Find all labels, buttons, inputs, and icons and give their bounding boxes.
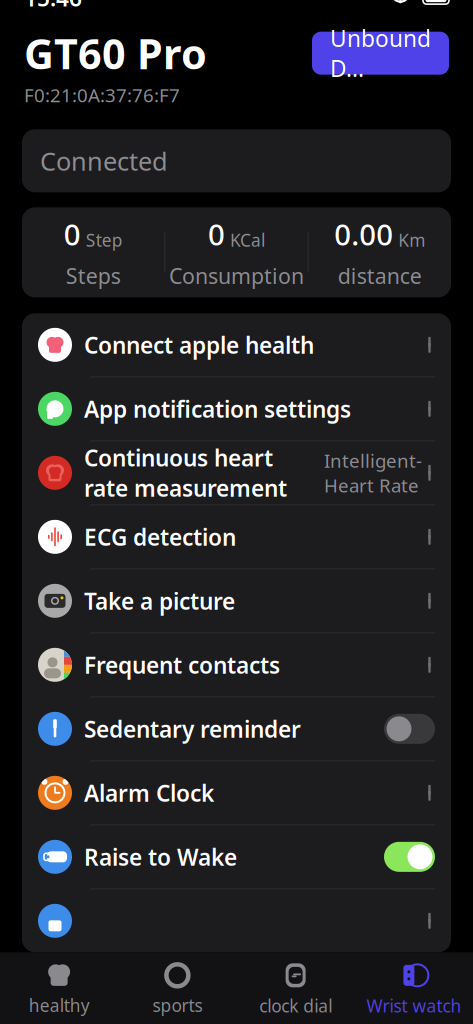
button[interactable]: Take a picture: [22, 569, 451, 633]
staticText: distance: [338, 262, 422, 290]
staticText: App notification settings: [84, 394, 351, 424]
staticText: Unbound D...: [330, 23, 431, 83]
button[interactable]: Raise to Wake: [22, 825, 451, 889]
button[interactable]: Connect apple health: [22, 313, 451, 377]
staticText: sports: [152, 994, 202, 1017]
button[interactable]: Wrist watch: [355, 962, 473, 1017]
button[interactable]: Unbound D...: [312, 32, 449, 75]
button[interactable]: healthy: [0, 963, 118, 1017]
button[interactable]: clock dial: [236, 962, 355, 1017]
staticText: Connected: [40, 144, 168, 178]
button[interactable]: Continuous heart rate measurement: [22, 441, 451, 505]
staticText: F0:21:0A:37:76:F7: [24, 82, 180, 107]
button[interactable]: App notification settings: [22, 377, 451, 441]
staticText: Frequent contacts: [84, 650, 280, 680]
staticText: 0: [64, 215, 81, 254]
staticText: KCal: [230, 229, 265, 252]
staticText: 15:46: [24, 0, 82, 13]
staticText: Steps: [66, 262, 121, 290]
button[interactable]: [22, 889, 451, 952]
button[interactable]: sports: [118, 963, 236, 1017]
button[interactable]: ECG detection: [22, 505, 451, 569]
button[interactable]: Alarm Clock: [22, 761, 451, 825]
staticText: Sedentary reminder: [84, 714, 301, 744]
button[interactable]: Sedentary reminder: [22, 697, 451, 761]
staticText: Km: [398, 229, 425, 252]
staticText: Connect apple health: [84, 330, 314, 360]
staticText: Continuous heart rate measurement: [84, 443, 287, 503]
staticText: Alarm Clock: [84, 778, 214, 808]
staticText: ECG detection: [84, 522, 236, 552]
staticText: GT60 Pro: [24, 26, 207, 81]
staticText: Consumption: [169, 262, 304, 290]
button[interactable]: Frequent contacts: [22, 633, 451, 697]
staticText: Wrist watch: [366, 994, 461, 1017]
staticText: Step: [86, 229, 123, 252]
staticText: healthy: [29, 994, 90, 1017]
staticText: IntelligentHeart Rate: [324, 448, 422, 498]
staticText: clock dial: [259, 994, 332, 1017]
staticText: 0.00: [334, 215, 393, 254]
staticText: 0: [208, 215, 225, 254]
staticText: Raise to Wake: [84, 842, 237, 872]
staticText: Take a picture: [84, 586, 235, 616]
